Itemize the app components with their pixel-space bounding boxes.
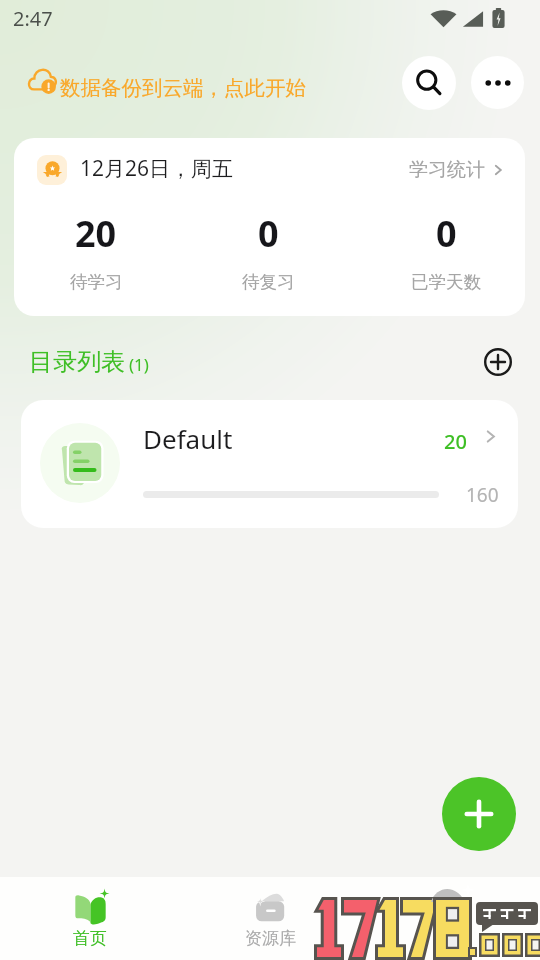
button[interactable]: Add folder	[479, 343, 517, 381]
staticText: 160	[466, 482, 499, 508]
button[interactable]: 我的	[360, 888, 540, 949]
button[interactable]: 学习统计	[407, 156, 507, 184]
staticText: 目录列表	[29, 347, 125, 377]
staticText: 已学天数	[411, 271, 481, 293]
staticText: Default	[143, 421, 233, 456]
staticText: 20	[444, 428, 467, 455]
staticText: 20	[75, 209, 117, 258]
staticText: 待学习	[70, 271, 123, 293]
button[interactable]: Default	[21, 400, 518, 528]
staticText: 0	[258, 209, 279, 258]
staticText: 0	[436, 209, 457, 258]
staticText: 我的	[433, 928, 467, 949]
staticText: 数据备份到云端，点此开始	[60, 75, 306, 101]
button[interactable]: Add	[442, 777, 516, 851]
staticText: 首页	[73, 928, 107, 949]
button[interactable]: Search	[402, 56, 456, 110]
button[interactable]: 12月26日，周五	[14, 138, 525, 316]
button[interactable]: 首页	[0, 888, 180, 949]
staticText: 12月26日，周五	[80, 154, 234, 183]
staticText: 2:47	[13, 5, 53, 32]
button[interactable]: 资源库	[180, 888, 360, 949]
staticText: 学习统计	[409, 158, 485, 182]
staticText: 待复习	[242, 271, 295, 293]
staticText: 资源库	[245, 928, 296, 949]
staticText: (1)	[129, 353, 149, 376]
button[interactable]: More options	[471, 56, 524, 109]
button[interactable]: 数据备份到云端，点此开始	[24, 72, 306, 103]
